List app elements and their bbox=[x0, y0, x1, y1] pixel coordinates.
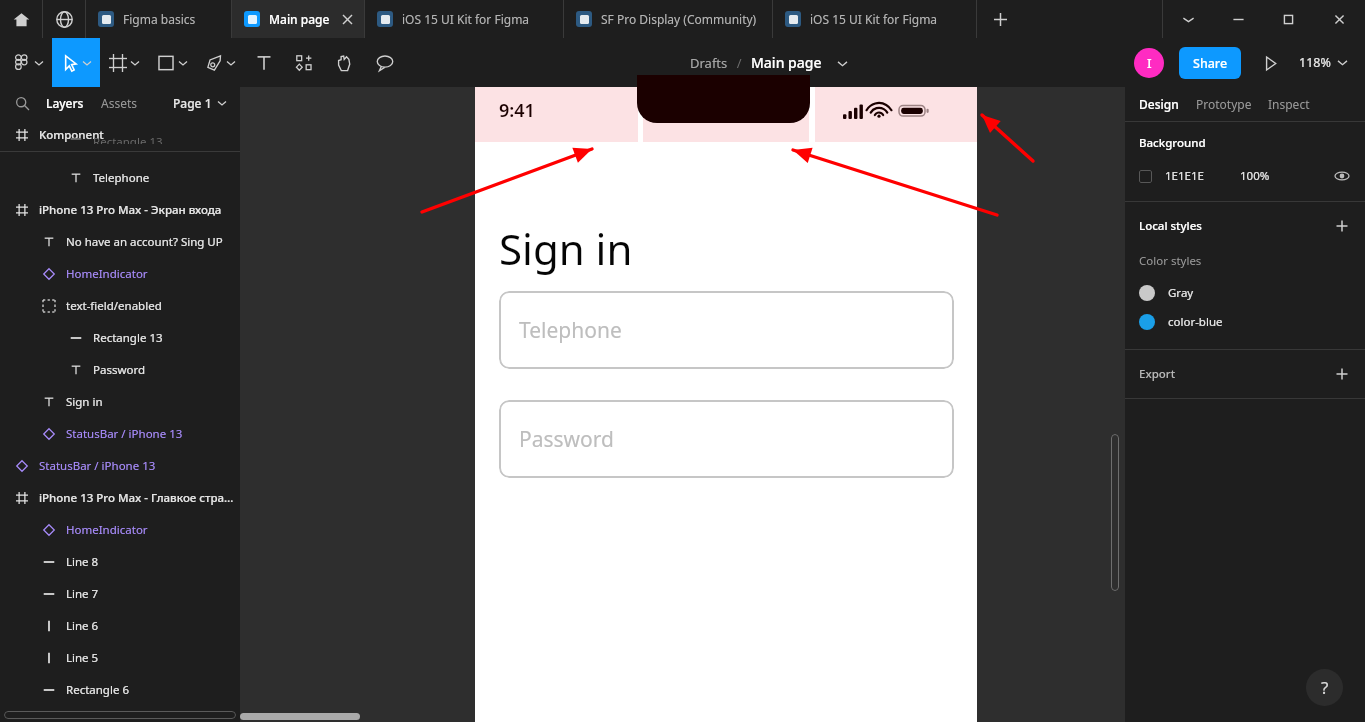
staticText: Password bbox=[93, 362, 146, 378]
button[interactable]: Home bbox=[0, 0, 42, 38]
button[interactable]: 118% bbox=[1295, 50, 1351, 75]
button[interactable]: Main page bbox=[232, 0, 364, 38]
button[interactable]: Add local style bbox=[1333, 217, 1351, 235]
button[interactable]: Maximize bbox=[1263, 0, 1313, 38]
button[interactable]: File options bbox=[833, 54, 851, 72]
button[interactable]: Telephone bbox=[68, 162, 234, 194]
button[interactable]: Pen tool bbox=[196, 38, 244, 87]
button[interactable]: Line 6 bbox=[41, 610, 234, 642]
button[interactable]: Components bbox=[284, 38, 324, 87]
button[interactable]: Gray bbox=[1139, 278, 1351, 307]
button[interactable]: Toggle background visibility bbox=[1333, 167, 1351, 185]
button[interactable]: Password bbox=[499, 400, 954, 478]
staticText: Gray bbox=[1168, 285, 1194, 301]
staticText: Background bbox=[1139, 135, 1206, 151]
button[interactable]: Rectangle 6 bbox=[41, 674, 234, 706]
button[interactable]: Share bbox=[1179, 47, 1241, 79]
staticText: Design bbox=[1139, 96, 1179, 112]
button[interactable]: Figma basics bbox=[86, 0, 231, 38]
button[interactable]: Minimize to tray bbox=[1163, 0, 1213, 38]
button[interactable]: Line 7 bbox=[41, 578, 234, 610]
button[interactable]: HomeIndicator bbox=[41, 258, 234, 290]
button[interactable]: 9:41 bbox=[499, 98, 535, 123]
button[interactable]: Page 1 bbox=[173, 95, 226, 111]
button[interactable]: Comment bbox=[364, 38, 406, 87]
button[interactable]: Search layers bbox=[14, 95, 30, 111]
button[interactable]: Frame tool bbox=[100, 38, 148, 87]
staticText: Assets bbox=[101, 95, 138, 111]
staticText: ? bbox=[1321, 676, 1329, 699]
button[interactable]: I bbox=[1134, 48, 1164, 78]
button[interactable]: 1E1E1E bbox=[1139, 164, 1351, 188]
button[interactable]: iPhone 13 Pro Max - Главкое стра… bbox=[14, 482, 234, 514]
button[interactable]: Komponent bbox=[14, 119, 234, 151]
button[interactable]: Layers bbox=[46, 95, 84, 111]
staticText: Export bbox=[1139, 366, 1176, 382]
button[interactable]: Add export setting bbox=[1333, 365, 1351, 383]
button[interactable]: Main menu bbox=[4, 38, 52, 87]
button[interactable]: text-field/enabled bbox=[41, 290, 234, 322]
button[interactable]: color-blue bbox=[1139, 307, 1351, 336]
staticText: Sign in bbox=[499, 220, 633, 277]
button[interactable]: Design bbox=[1139, 96, 1179, 112]
button[interactable]: Drafts bbox=[688, 50, 730, 76]
staticText: Local styles bbox=[1139, 218, 1202, 234]
staticText: Layers bbox=[46, 95, 84, 111]
button[interactable]: Telephone bbox=[499, 291, 954, 369]
button[interactable]: Minimize bbox=[1213, 0, 1263, 38]
button[interactable]: New tab bbox=[977, 0, 1023, 38]
staticText: Line 5 bbox=[66, 650, 99, 666]
staticText: No have an account? Sing UP bbox=[66, 234, 223, 250]
button[interactable]: StatusBar / iPhone 13 bbox=[14, 450, 234, 482]
staticText: 9:41 bbox=[499, 98, 535, 123]
staticText: iOS 15 UI Kit for Figma (Comm bbox=[402, 11, 555, 27]
button[interactable]: Assets bbox=[101, 95, 138, 111]
button[interactable]: No have an account? Sing UP bbox=[41, 226, 234, 258]
staticText: Password bbox=[519, 425, 614, 454]
button[interactable]: Shape tool bbox=[148, 38, 196, 87]
button[interactable]: Present bbox=[1257, 50, 1283, 76]
staticText: Line 6 bbox=[66, 618, 99, 634]
staticText: 100% bbox=[1240, 168, 1270, 184]
button[interactable]: iPhone 13 Pro Max - Экран входа bbox=[14, 194, 234, 226]
staticText: iPhone 13 Pro Max - Экран входа bbox=[39, 202, 222, 218]
button[interactable]: StatusBar / iPhone 13 bbox=[41, 418, 234, 450]
staticText: StatusBar / iPhone 13 bbox=[39, 458, 156, 474]
button[interactable]: iOS 15 UI Kit for Figma (Comm bbox=[773, 0, 976, 38]
button[interactable]: Rectangle 13 bbox=[68, 134, 234, 144]
staticText: Color styles bbox=[1139, 253, 1202, 269]
button[interactable]: Sign in bbox=[41, 386, 234, 418]
button[interactable]: Line 5 bbox=[41, 642, 234, 674]
staticText: / bbox=[730, 54, 749, 72]
button[interactable]: Close tab bbox=[338, 10, 356, 28]
staticText: Page 1 bbox=[173, 95, 212, 111]
button[interactable]: Main page bbox=[749, 49, 824, 76]
button[interactable]: iOS 15 UI Kit for Figma (Comm bbox=[365, 0, 563, 38]
button[interactable]: Line 8 bbox=[41, 546, 234, 578]
staticText: I bbox=[1147, 54, 1152, 72]
button[interactable]: HomeIndicator bbox=[41, 514, 234, 546]
button[interactable]: Move tool bbox=[52, 38, 100, 87]
button[interactable]: Rectangle 13 bbox=[68, 322, 234, 354]
staticText: Telephone bbox=[519, 316, 622, 345]
button[interactable]: Explore bbox=[43, 0, 85, 38]
staticText: color-blue bbox=[1168, 314, 1223, 330]
staticText: HomeIndicator bbox=[66, 522, 148, 538]
staticText: Share bbox=[1193, 55, 1228, 72]
staticText: Main page bbox=[751, 53, 822, 72]
staticText: Line 7 bbox=[66, 586, 99, 602]
button[interactable]: Prototype bbox=[1196, 96, 1252, 112]
button[interactable]: Hand tool bbox=[324, 38, 364, 87]
button[interactable]: SF Pro Display (Community) bbox=[564, 0, 772, 38]
button[interactable]: Close bbox=[1313, 0, 1365, 38]
staticText: Figma basics bbox=[123, 11, 196, 27]
staticText: StatusBar / iPhone 13 bbox=[66, 426, 183, 442]
button[interactable]: Help bbox=[1306, 669, 1343, 706]
staticText: Komponent bbox=[39, 127, 104, 143]
button[interactable]: Password bbox=[68, 354, 234, 386]
staticText: Main page bbox=[269, 11, 330, 27]
button[interactable]: Inspect bbox=[1268, 96, 1310, 112]
staticText: Line 8 bbox=[66, 554, 99, 570]
button[interactable]: Text tool bbox=[244, 38, 284, 87]
staticText: iOS 15 UI Kit for Figma (Comm bbox=[810, 11, 968, 27]
